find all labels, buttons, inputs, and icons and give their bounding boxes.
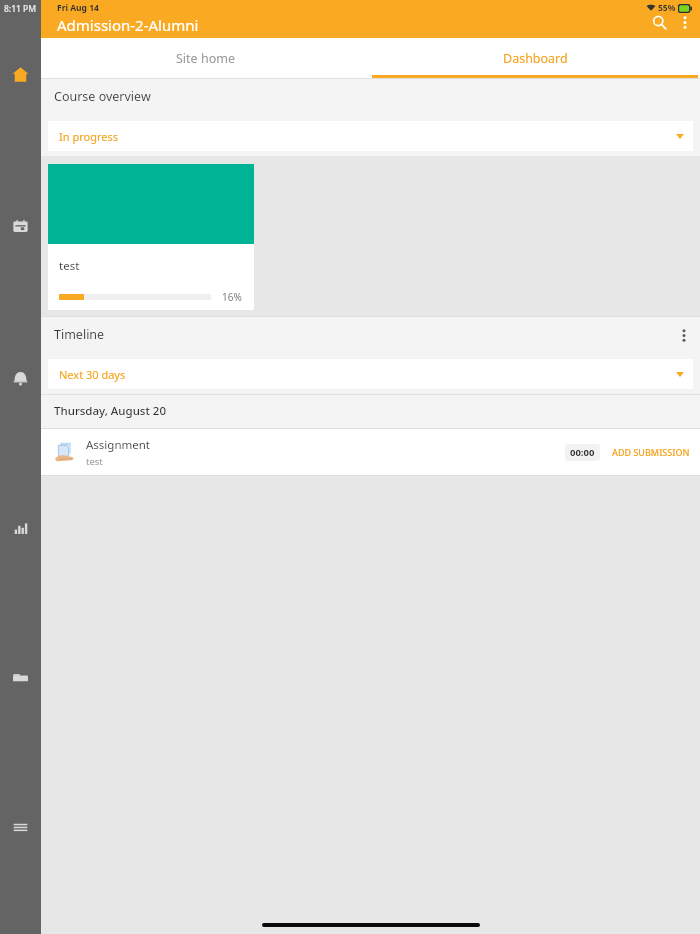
button[interactable]: Home bbox=[0, 63, 41, 85]
button[interactable]: Timeline options bbox=[672, 323, 696, 347]
staticText: 8:11 PM bbox=[4, 3, 37, 15]
button[interactable]: Next 30 days bbox=[48, 359, 693, 389]
button[interactable]: More options bbox=[674, 11, 696, 33]
staticText: Course overview bbox=[54, 88, 151, 105]
button[interactable]: In progress bbox=[48, 121, 693, 151]
staticText: Thursday, August 20 bbox=[54, 403, 167, 419]
staticText: Assignment bbox=[86, 437, 151, 453]
button[interactable]: test bbox=[48, 164, 254, 310]
staticText: ADD SUBMISSION bbox=[612, 446, 690, 458]
button[interactable]: Assignment bbox=[41, 428, 700, 476]
button[interactable]: Grades bbox=[0, 516, 41, 538]
staticText: 16% bbox=[222, 290, 242, 304]
staticText: Next 30 days bbox=[59, 367, 126, 382]
staticText: 55% bbox=[658, 2, 676, 14]
button[interactable]: Site home bbox=[41, 38, 370, 78]
button[interactable]: Menu bbox=[0, 815, 41, 837]
button[interactable]: Notifications bbox=[0, 367, 41, 389]
staticText: In progress bbox=[59, 129, 118, 144]
staticText: Timeline bbox=[54, 326, 105, 343]
staticText: test bbox=[59, 258, 80, 274]
staticText: test bbox=[86, 455, 103, 468]
staticText: Fri Aug 14 bbox=[57, 2, 99, 14]
staticText: Dashboard bbox=[503, 50, 568, 67]
button[interactable]: Search bbox=[644, 7, 674, 37]
button[interactable]: Files bbox=[0, 666, 41, 688]
button[interactable]: Calendar bbox=[0, 215, 41, 237]
staticText: Site home bbox=[176, 50, 235, 67]
staticText: 00:00 bbox=[570, 446, 595, 459]
staticText: Admission-2-Alumni bbox=[57, 15, 199, 35]
button[interactable]: Dashboard bbox=[370, 38, 700, 78]
button[interactable]: ADD SUBMISSION bbox=[610, 442, 692, 462]
